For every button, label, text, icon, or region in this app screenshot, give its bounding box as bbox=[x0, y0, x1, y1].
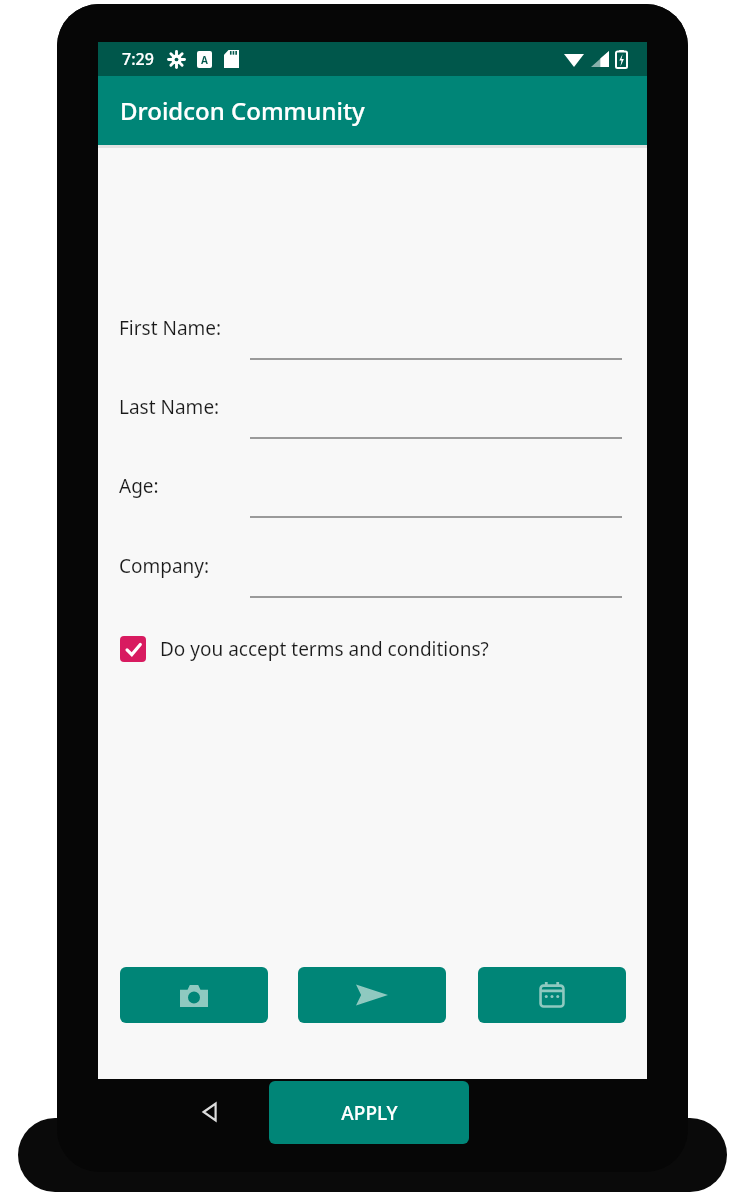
button[interactable]: Camera bbox=[120, 967, 268, 1023]
button[interactable]: Back bbox=[192, 1094, 228, 1130]
staticText: First Name: bbox=[119, 315, 222, 341]
staticText: APPLY bbox=[341, 1100, 398, 1126]
staticText: Company: bbox=[119, 553, 210, 579]
staticText: A bbox=[201, 53, 208, 67]
staticText: Last Name: bbox=[119, 394, 220, 420]
button[interactable]: Send bbox=[298, 967, 446, 1023]
staticText: Age: bbox=[119, 473, 159, 499]
button[interactable]: Home bbox=[352, 1103, 392, 1121]
button[interactable]: APPLY bbox=[269, 1081, 469, 1144]
button[interactable]: Do you accept terms and conditions? bbox=[120, 636, 489, 662]
staticText: Droidcon Community bbox=[120, 94, 365, 127]
button[interactable]: Calendar bbox=[478, 967, 626, 1023]
staticText: 7:29 bbox=[122, 48, 154, 70]
staticText: Do you accept terms and conditions? bbox=[160, 636, 489, 662]
